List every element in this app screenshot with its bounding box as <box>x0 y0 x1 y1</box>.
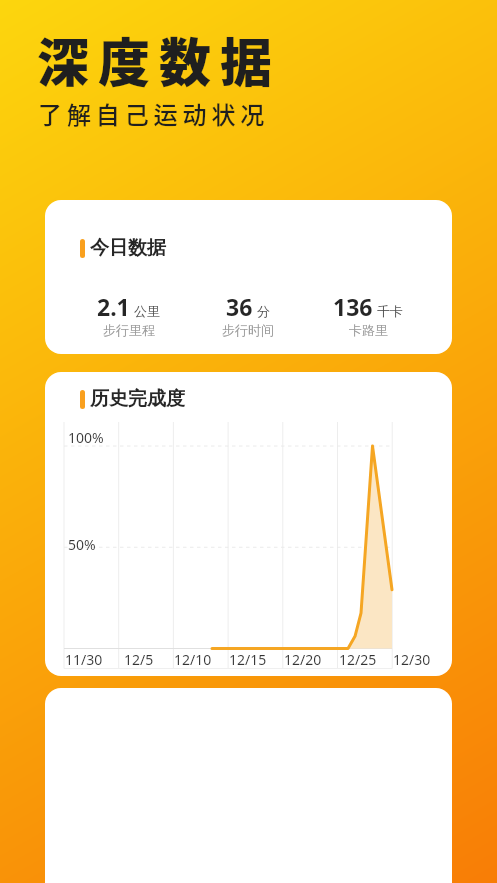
staticText: 136 <box>333 291 373 322</box>
button[interactable]: 今日数据 <box>45 200 452 354</box>
staticText: 50% <box>68 535 96 554</box>
staticText: 卡路里 <box>349 322 388 338</box>
staticText: 12/25 <box>339 650 377 669</box>
staticText: 分 <box>257 303 270 319</box>
button[interactable]: 历史完成度 <box>45 372 452 676</box>
staticText: 12/15 <box>229 650 267 669</box>
staticText: 11/30 <box>65 650 103 669</box>
staticText: 2.1 <box>97 291 130 322</box>
staticText: 今日数据 <box>90 236 166 260</box>
button[interactable] <box>45 688 452 883</box>
staticText: 12/20 <box>284 650 322 669</box>
staticText: 12/5 <box>124 650 154 669</box>
staticText: 公里 <box>134 303 160 319</box>
staticText: 步行时间 <box>222 322 274 338</box>
staticText: 了解自己运动状况 <box>38 96 270 131</box>
staticText: 12/10 <box>174 650 212 669</box>
staticText: 深度数据 <box>37 22 282 97</box>
staticText: 12/30 <box>393 650 431 669</box>
staticText: 36 <box>226 291 253 322</box>
staticText: 历史完成度 <box>90 387 185 411</box>
staticText: 千卡 <box>377 303 403 319</box>
staticText: 步行里程 <box>103 322 155 338</box>
staticText: 100% <box>68 428 104 447</box>
